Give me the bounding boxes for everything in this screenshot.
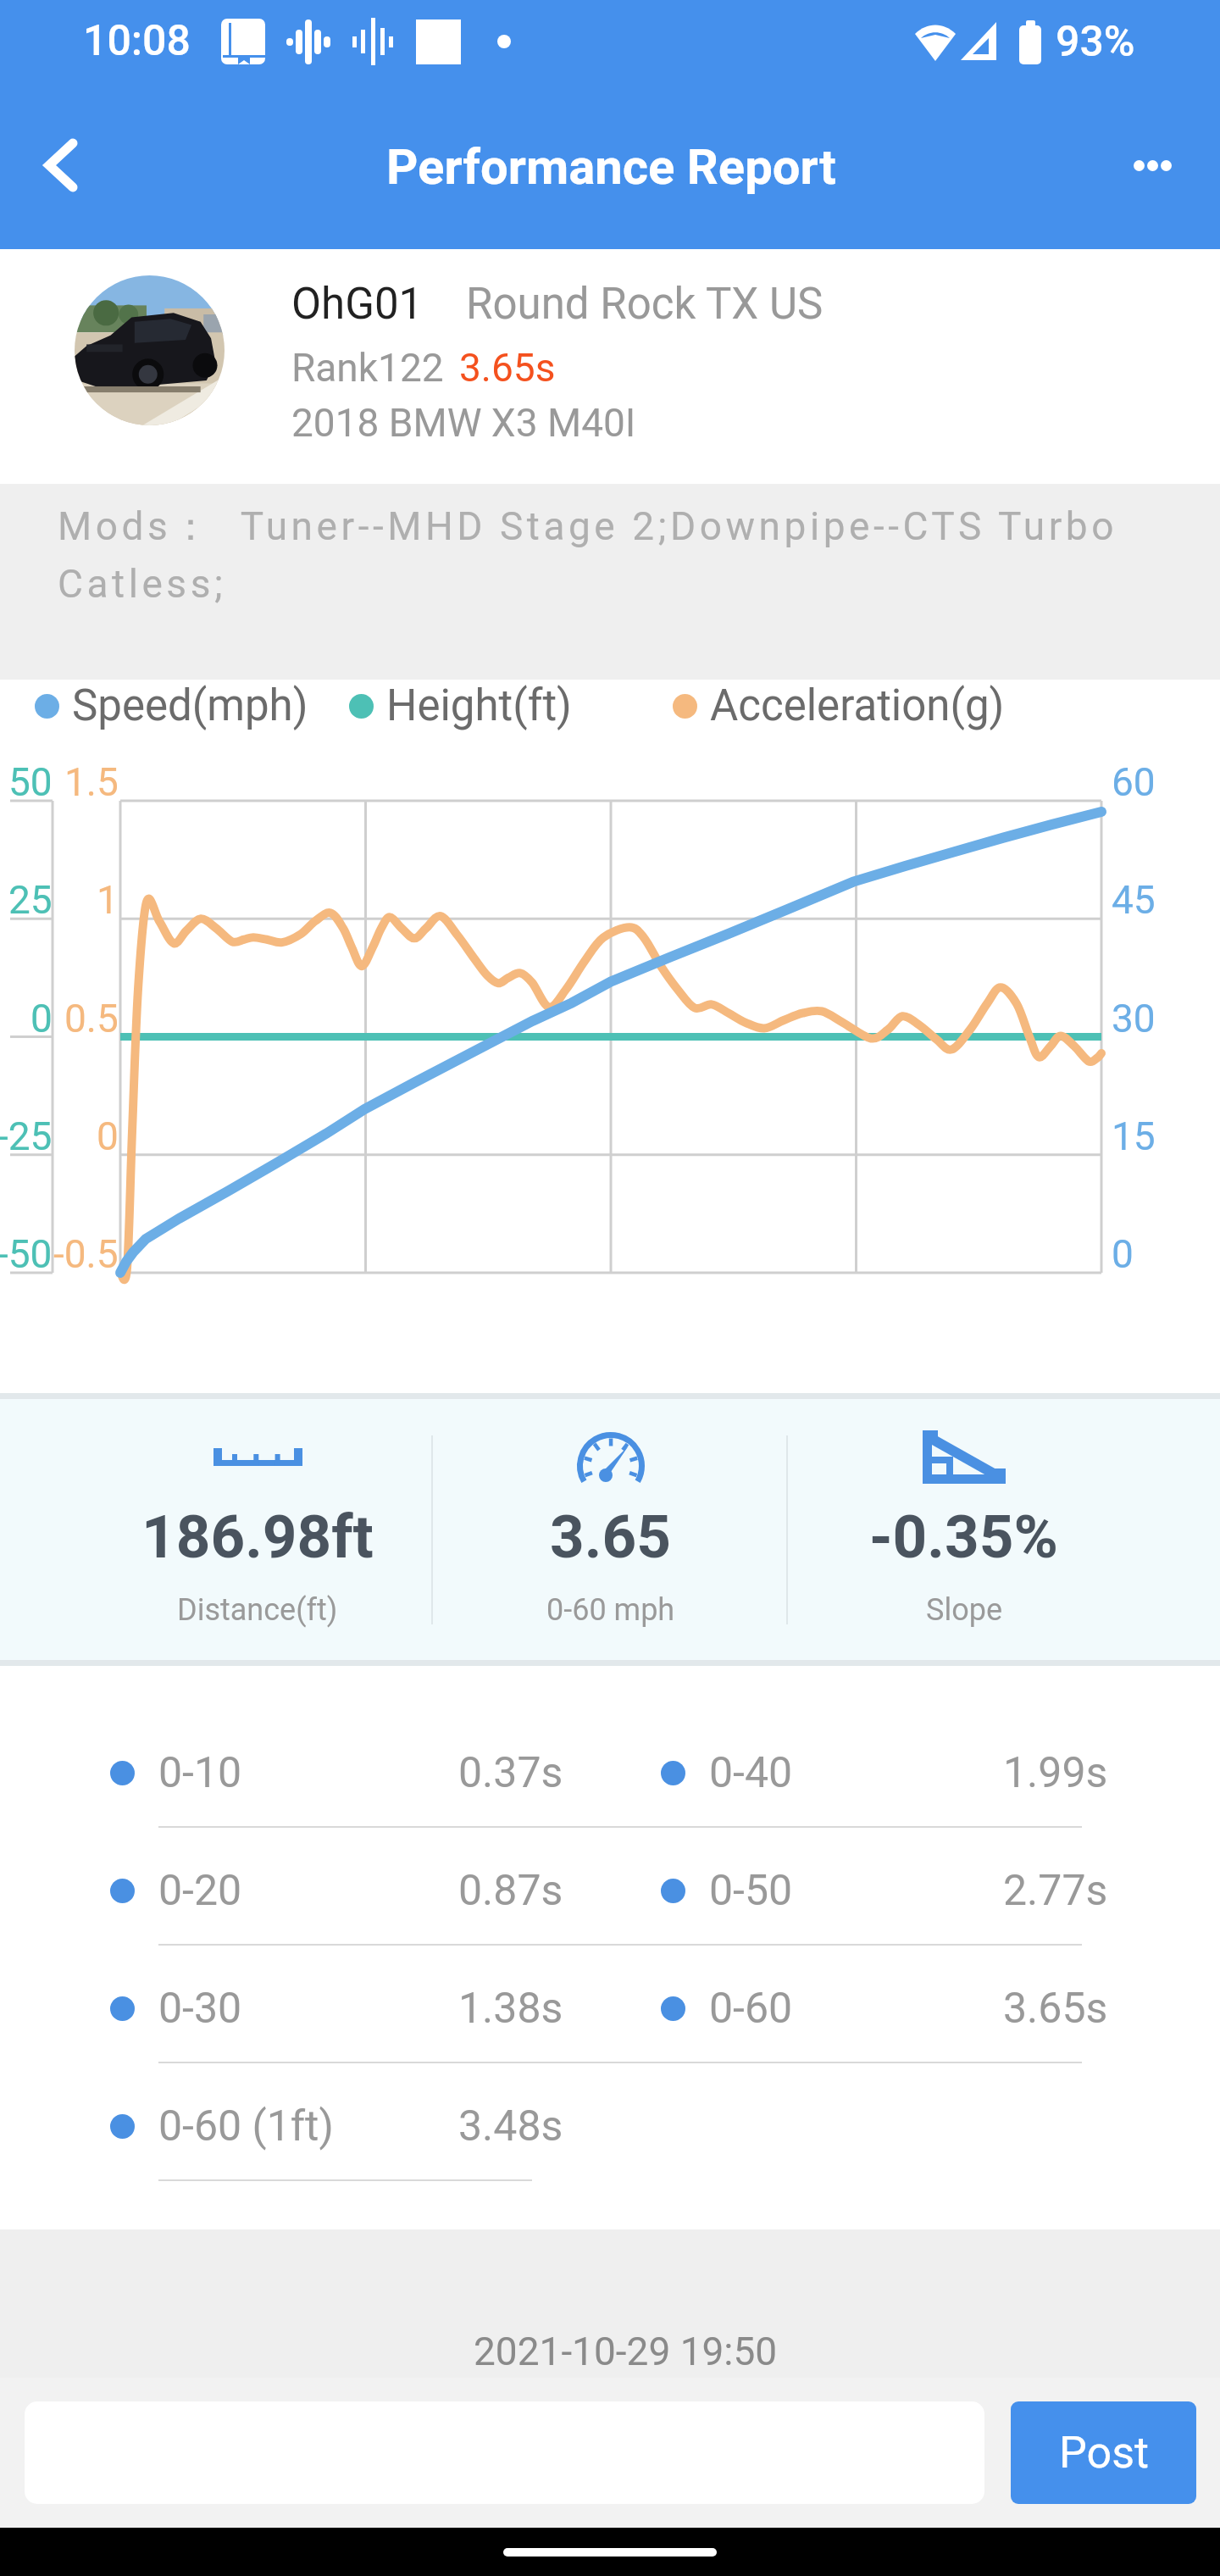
button[interactable]: Back [8, 113, 114, 218]
staticText: 0-60 [709, 1984, 793, 2034]
staticText: -50 [0, 1231, 53, 1277]
staticText: Slope [926, 1592, 1002, 1628]
staticText: 60 [1112, 759, 1156, 805]
staticText: -0.5 [53, 1231, 119, 1277]
button[interactable]: 0-40 [610, 1720, 1220, 1826]
button[interactable]: Post [1011, 2401, 1196, 2504]
staticText: 0.5 [64, 996, 119, 1041]
staticText: 10:08 [83, 16, 191, 66]
staticText: 2021-10-29 19:50 [474, 2329, 778, 2374]
staticText: 3.65s [459, 345, 556, 391]
staticText: 3.65s [1003, 1984, 1108, 2034]
staticText: 45 [1112, 877, 1156, 923]
staticText: 30 [1112, 996, 1156, 1041]
staticText: 0.37s [458, 1748, 563, 1798]
staticText: 0-10 [158, 1748, 242, 1798]
staticText: Mods： Tuner--MHD Stage 2;Downpipe--CTS T… [58, 502, 1206, 607]
button[interactable]: 0-60 [610, 1956, 1220, 2062]
staticText: 25 [8, 877, 53, 923]
button[interactable]: 0-20 [0, 1838, 610, 1944]
staticText: 0.87s [458, 1866, 563, 1916]
staticText: 0-30 [158, 1984, 242, 2034]
staticText: Performance Report [386, 138, 836, 196]
button[interactable]: 0-50 [610, 1838, 1220, 1944]
staticText: 186.98ft [141, 1502, 374, 1572]
staticText: 93% [1056, 17, 1135, 67]
staticText: 0-60 (1ft) [158, 2101, 334, 2151]
staticText: 1.5 [64, 759, 119, 805]
staticText: Speed(mph) [72, 680, 308, 731]
staticText: 15 [1112, 1113, 1156, 1159]
staticText: 0 [1112, 1231, 1134, 1277]
staticText: Distance(ft) [177, 1592, 338, 1628]
staticText: 0 [30, 996, 53, 1041]
staticText: 0-60 mph [546, 1592, 675, 1628]
staticText: 0-40 [709, 1748, 793, 1798]
staticText: 1.99s [1003, 1748, 1108, 1798]
button[interactable]: 0-30 [0, 1956, 610, 2062]
staticText: -25 [0, 1113, 53, 1159]
staticText: 1 [97, 877, 119, 923]
button[interactable]: More options [1100, 113, 1205, 218]
staticText: Round Rock TX US [466, 279, 823, 330]
button[interactable]: 0-60 (1ft) [0, 2074, 610, 2179]
staticText: 2.77s [1003, 1866, 1108, 1916]
staticText: 2018 BMW X3 M40I [291, 400, 636, 446]
staticText: 0-50 [709, 1866, 793, 1916]
staticText: OhG01 [291, 279, 424, 330]
staticText: 1.38s [458, 1984, 563, 2034]
staticText: 0-20 [158, 1866, 242, 1916]
button[interactable]: OhG01 [0, 249, 1220, 484]
staticText: Acceleration(g) [710, 680, 1005, 731]
staticText: -0.35% [869, 1502, 1058, 1572]
staticText: Height(ft) [386, 680, 572, 731]
staticText: 50 [8, 759, 53, 805]
staticText: 0 [97, 1113, 119, 1159]
button[interactable]: 0-10 [0, 1720, 610, 1826]
staticText: 3.65 [550, 1502, 671, 1572]
staticText: Rank122 [291, 345, 444, 391]
staticText: 3.48s [458, 2101, 563, 2151]
staticText: Post [1059, 2427, 1149, 2479]
